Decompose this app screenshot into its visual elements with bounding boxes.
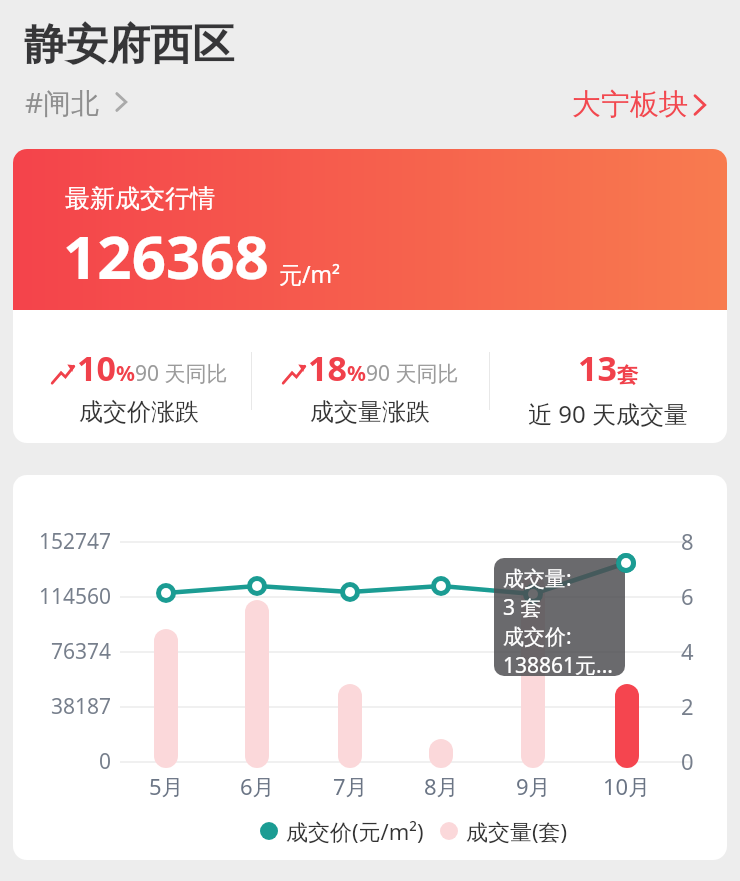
staticText: 成交价: [503,622,572,651]
button[interactable]: 10 [20,310,258,427]
staticText: 静安府西区 [24,19,234,72]
staticText: 90 天同比 [366,359,459,388]
staticText: 套 [617,362,638,388]
button[interactable]: 18 [251,310,489,427]
staticText: 3 套 [503,593,542,622]
staticText: 9月 [516,771,551,801]
staticText: 90 天同比 [135,359,228,388]
staticText: #闸北 [25,83,100,121]
staticText: 成交价涨跌 [79,397,199,427]
staticText: 138861元... [503,651,613,676]
staticText: 成交量涨跌 [310,397,430,427]
staticText: % [347,359,366,388]
staticText: 近 90 天成交量 [528,397,688,430]
staticText: 8月 [424,771,459,801]
staticText: 114560 [39,582,112,611]
button[interactable]: 大宁板块 [572,86,707,123]
staticText: 成交价(元/m²) [286,816,424,846]
staticText: 大宁板块 [572,86,688,123]
staticText: 元/m² [279,258,341,289]
staticText: 126368 [63,215,269,297]
staticText: 2 [681,691,694,721]
staticText: 7月 [333,771,368,801]
staticText: 成交量: [503,564,572,593]
staticText: 76374 [51,637,112,666]
staticText: 18 [308,345,347,391]
staticText: 成交量(套) [466,816,568,846]
staticText: 38187 [51,692,112,721]
staticText: 13 [578,345,617,391]
button[interactable]: 152747 [13,475,727,860]
staticText: % [116,359,135,388]
staticText: 0 [99,747,112,776]
staticText: 4 [681,636,694,666]
staticText: 152747 [39,527,112,556]
button[interactable]: #闸北 [25,83,128,121]
staticText: 6月 [240,771,275,801]
staticText: 10 [77,345,116,391]
button[interactable]: 13 [489,310,727,430]
staticText: 最新成交行情 [65,183,215,214]
staticText: 6 [681,581,694,611]
staticText: 10月 [603,771,651,801]
staticText: 8 [681,526,694,556]
staticText: 5月 [149,771,184,801]
staticText: 0 [681,746,694,776]
